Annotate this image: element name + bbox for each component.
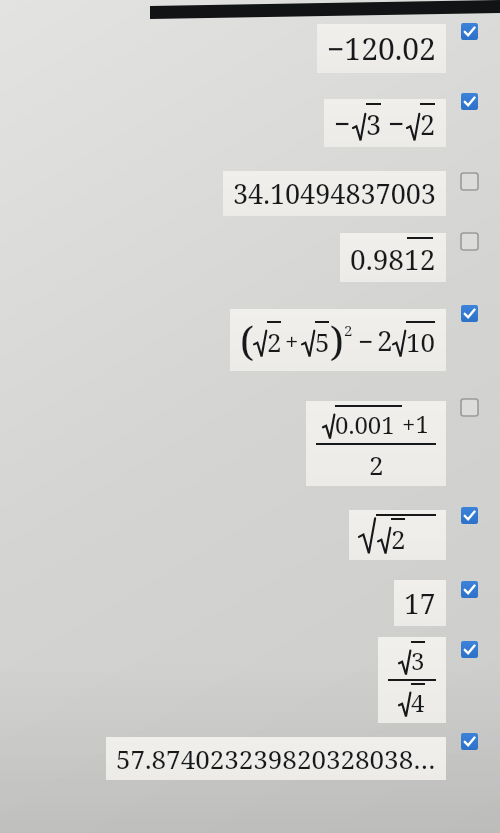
button[interactable]: 2 — [0, 496, 492, 574]
staticText: ( — [240, 313, 254, 367]
staticText: 4 — [411, 686, 425, 719]
staticText: 57.874023239820328038… — [116, 741, 436, 776]
staticText: −120.02 — [327, 28, 436, 69]
button[interactable]: Select −120.02 — [458, 20, 480, 42]
staticText: ) — [330, 313, 344, 367]
staticText: 3 — [411, 644, 425, 677]
staticText: 2 — [344, 320, 353, 340]
staticText: 10 — [406, 324, 436, 359]
button[interactable]: 0.001 — [0, 390, 492, 496]
button[interactable]: Select 34.10494837003 — [458, 170, 480, 192]
button[interactable]: Select 0.9812 repeating — [458, 230, 480, 252]
button[interactable]: Select root 3 over root 4 — [458, 638, 480, 660]
staticText: 5 — [315, 324, 330, 359]
button[interactable]: Select root of root 2 — [458, 504, 480, 526]
button[interactable]: 17 — [0, 574, 492, 632]
button[interactable]: Select (root 2 plus root 5) squared minu… — [458, 302, 480, 324]
button[interactable]: − — [0, 84, 492, 162]
staticText: 0.98 — [350, 240, 404, 278]
staticText: − — [334, 104, 351, 142]
staticText: + — [285, 324, 299, 357]
staticText: 34.10494837003 — [233, 175, 436, 212]
button[interactable]: 34.10494837003 — [0, 162, 492, 224]
staticText: 3 — [366, 106, 382, 143]
button[interactable]: 3 — [0, 632, 492, 728]
staticText: 12 — [404, 240, 436, 278]
button[interactable]: 0.98 — [0, 224, 492, 290]
staticText: − — [388, 104, 405, 142]
button[interactable]: Select 57.874023239820328038 — [458, 730, 480, 752]
staticText: 2 — [420, 106, 436, 143]
button[interactable]: Select root 0.001 plus 1 over 2 — [458, 396, 480, 418]
staticText: 2 — [267, 324, 282, 359]
staticText: 0.001 — [335, 408, 395, 441]
button[interactable]: Select 17 — [458, 578, 480, 600]
button[interactable]: −120.02 — [0, 12, 492, 84]
button[interactable]: Select minus root 3 minus root 2 — [458, 90, 480, 112]
staticText: 2 — [391, 521, 406, 556]
staticText: 2 — [369, 447, 384, 482]
staticText: 17 — [404, 584, 436, 622]
button[interactable]: 57.874023239820328038… — [0, 728, 492, 788]
staticText: − — [358, 323, 374, 358]
staticText: +1 — [402, 407, 429, 440]
button[interactable]: ( — [0, 290, 492, 390]
staticText: 2 — [377, 321, 393, 359]
